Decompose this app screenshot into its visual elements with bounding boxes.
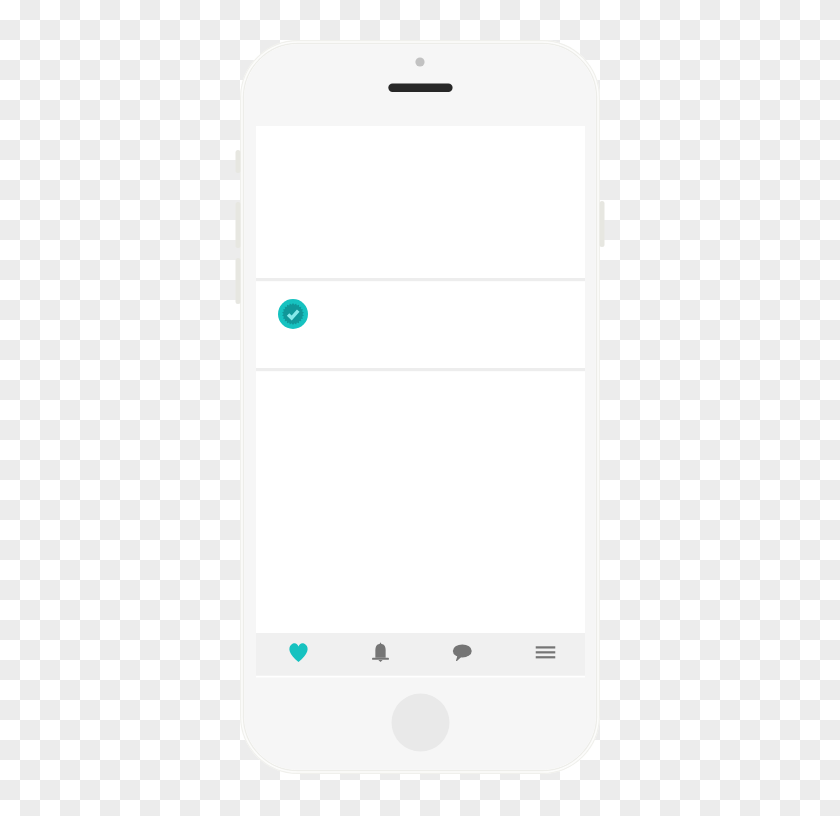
button[interactable]: Messages <box>421 633 503 676</box>
button[interactable]: Favorites <box>256 633 339 676</box>
button[interactable]: Notifications <box>339 633 421 676</box>
button[interactable]: Menu <box>503 633 585 676</box>
button[interactable]: Verified <box>278 299 308 329</box>
